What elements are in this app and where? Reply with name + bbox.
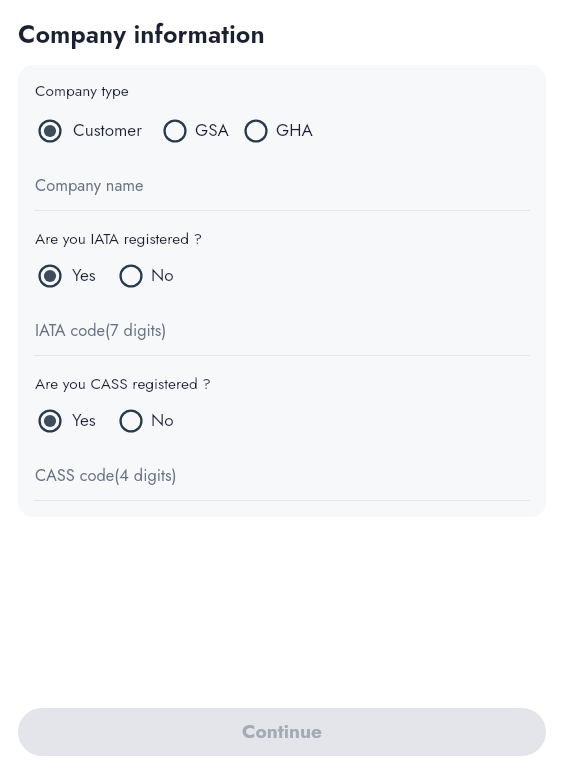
button[interactable]: No bbox=[119, 263, 174, 288]
staticText: Are you IATA registered ? bbox=[35, 228, 203, 250]
staticText: No bbox=[151, 263, 174, 288]
staticText: Company information bbox=[18, 16, 265, 52]
button[interactable]: GHA bbox=[244, 118, 313, 143]
staticText: No bbox=[151, 408, 174, 433]
button[interactable]: No bbox=[119, 408, 174, 433]
staticText: Yes bbox=[72, 408, 96, 433]
button[interactable]: Continue bbox=[18, 708, 546, 756]
staticText: Are you CASS registered ? bbox=[35, 373, 211, 395]
staticText: Yes bbox=[72, 263, 96, 288]
button[interactable]: Customer bbox=[38, 118, 143, 143]
button[interactable]: Yes bbox=[38, 263, 96, 288]
staticText: GHA bbox=[276, 118, 313, 143]
staticText: Continue bbox=[242, 717, 322, 745]
staticText: Company name bbox=[35, 173, 144, 197]
button[interactable]: Yes bbox=[38, 408, 96, 433]
button[interactable]: GSA bbox=[163, 118, 229, 143]
staticText: Company type bbox=[35, 80, 129, 102]
staticText: Customer bbox=[73, 118, 143, 143]
staticText: GSA bbox=[195, 118, 229, 143]
staticText: CASS code(4 digits) bbox=[35, 463, 177, 487]
staticText: IATA code(7 digits) bbox=[35, 318, 167, 342]
